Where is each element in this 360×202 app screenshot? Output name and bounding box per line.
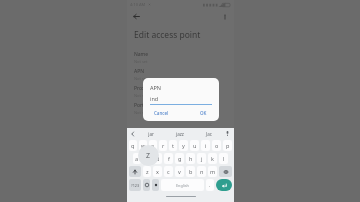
staticText: . (209, 182, 211, 189)
button[interactable]: q (129, 140, 137, 151)
button[interactable]: Proxy (127, 83, 234, 100)
button[interactable]: Keyboard settings (152, 179, 159, 191)
staticText: t (172, 142, 174, 149)
staticText: k (211, 155, 214, 162)
staticText: ind (150, 95, 159, 102)
button[interactable]: u (190, 140, 199, 151)
button[interactable]: . (206, 179, 214, 191)
staticText: b (189, 168, 193, 175)
button[interactable]: Shift (129, 166, 141, 177)
button[interactable]: Name (127, 49, 234, 66)
button[interactable]: r (159, 140, 167, 151)
button[interactable]: e (149, 140, 157, 151)
staticText: APN (134, 68, 145, 75)
button[interactable]: o (212, 140, 221, 151)
button[interactable]: z (143, 166, 151, 177)
staticText: p (226, 142, 230, 149)
staticText: Name (134, 51, 149, 58)
staticText: d (156, 155, 160, 162)
button[interactable]: Backspace (219, 166, 232, 177)
staticText: Jac (206, 131, 212, 137)
staticText: o (215, 142, 219, 149)
staticText: w (141, 142, 146, 149)
staticText: u (193, 142, 197, 149)
button[interactable]: jazz (165, 128, 194, 139)
staticText: r (162, 142, 165, 149)
staticText: h (189, 155, 193, 162)
staticText: Not set (134, 93, 148, 98)
staticText: Cancel (154, 110, 169, 116)
staticText: OK (200, 110, 207, 116)
staticText: z (146, 168, 149, 175)
button[interactable]: g (175, 153, 184, 164)
button[interactable]: y (179, 140, 188, 151)
button[interactable]: f (164, 153, 173, 164)
button[interactable]: s (143, 153, 151, 164)
button[interactable]: p (223, 140, 232, 151)
staticText: y (182, 142, 185, 149)
button[interactable]: Emoji (143, 179, 150, 191)
staticText: Not set (134, 110, 148, 115)
button[interactable]: b (186, 166, 195, 177)
button[interactable]: n (197, 166, 206, 177)
button[interactable]: k (208, 153, 217, 164)
button[interactable]: APN (127, 66, 234, 83)
button[interactable]: Port (127, 100, 234, 117)
button[interactable]: jar (137, 128, 165, 139)
staticText: j (201, 155, 203, 162)
button[interactable]: i (201, 140, 210, 151)
staticText: Edit access point (134, 29, 201, 41)
staticText: Proxy (134, 85, 148, 92)
staticText: ?123 (131, 183, 140, 188)
staticText: c (167, 168, 170, 175)
staticText: f (168, 155, 170, 162)
button[interactable]: a (133, 153, 141, 164)
button[interactable]: Jac (194, 128, 223, 139)
staticText: jar (148, 131, 154, 137)
button[interactable]: d (153, 153, 162, 164)
staticText: Not set (134, 76, 148, 81)
staticText: l (223, 155, 225, 162)
staticText: 4:10 AM (130, 2, 146, 7)
staticText: q (131, 142, 135, 149)
staticText: g (178, 155, 182, 162)
button[interactable]: OK (195, 108, 212, 118)
button[interactable]: w (139, 140, 147, 151)
staticText: x (156, 168, 159, 175)
button[interactable]: Space (161, 179, 204, 191)
button[interactable]: j (197, 153, 206, 164)
staticText: Port (134, 102, 144, 109)
button[interactable]: l (219, 153, 228, 164)
button[interactable]: h (186, 153, 195, 164)
button[interactable]: Voice input (223, 129, 232, 138)
button[interactable]: Cancel (150, 108, 173, 118)
staticText: APN (150, 84, 162, 91)
staticText: English (176, 183, 189, 188)
staticText: jazz (176, 131, 184, 137)
staticText: s (146, 155, 149, 162)
button[interactable]: Back (131, 11, 142, 22)
staticText: i (205, 142, 207, 149)
staticText: v (178, 168, 181, 175)
button[interactable]: More options (219, 11, 230, 22)
staticText: m (210, 168, 216, 175)
button[interactable]: c (164, 166, 173, 177)
button[interactable]: x (153, 166, 162, 177)
button[interactable]: t (169, 140, 177, 151)
button[interactable]: Enter (216, 179, 232, 191)
staticText: Z (146, 151, 151, 161)
staticText: n (200, 168, 204, 175)
staticText: Not set (134, 59, 148, 64)
button[interactable]: v (175, 166, 184, 177)
staticText: a (135, 155, 139, 162)
button[interactable]: Previous suggestions (129, 130, 137, 138)
button[interactable]: ?123 (129, 179, 141, 191)
staticText: e (151, 142, 155, 149)
button[interactable]: m (208, 166, 217, 177)
